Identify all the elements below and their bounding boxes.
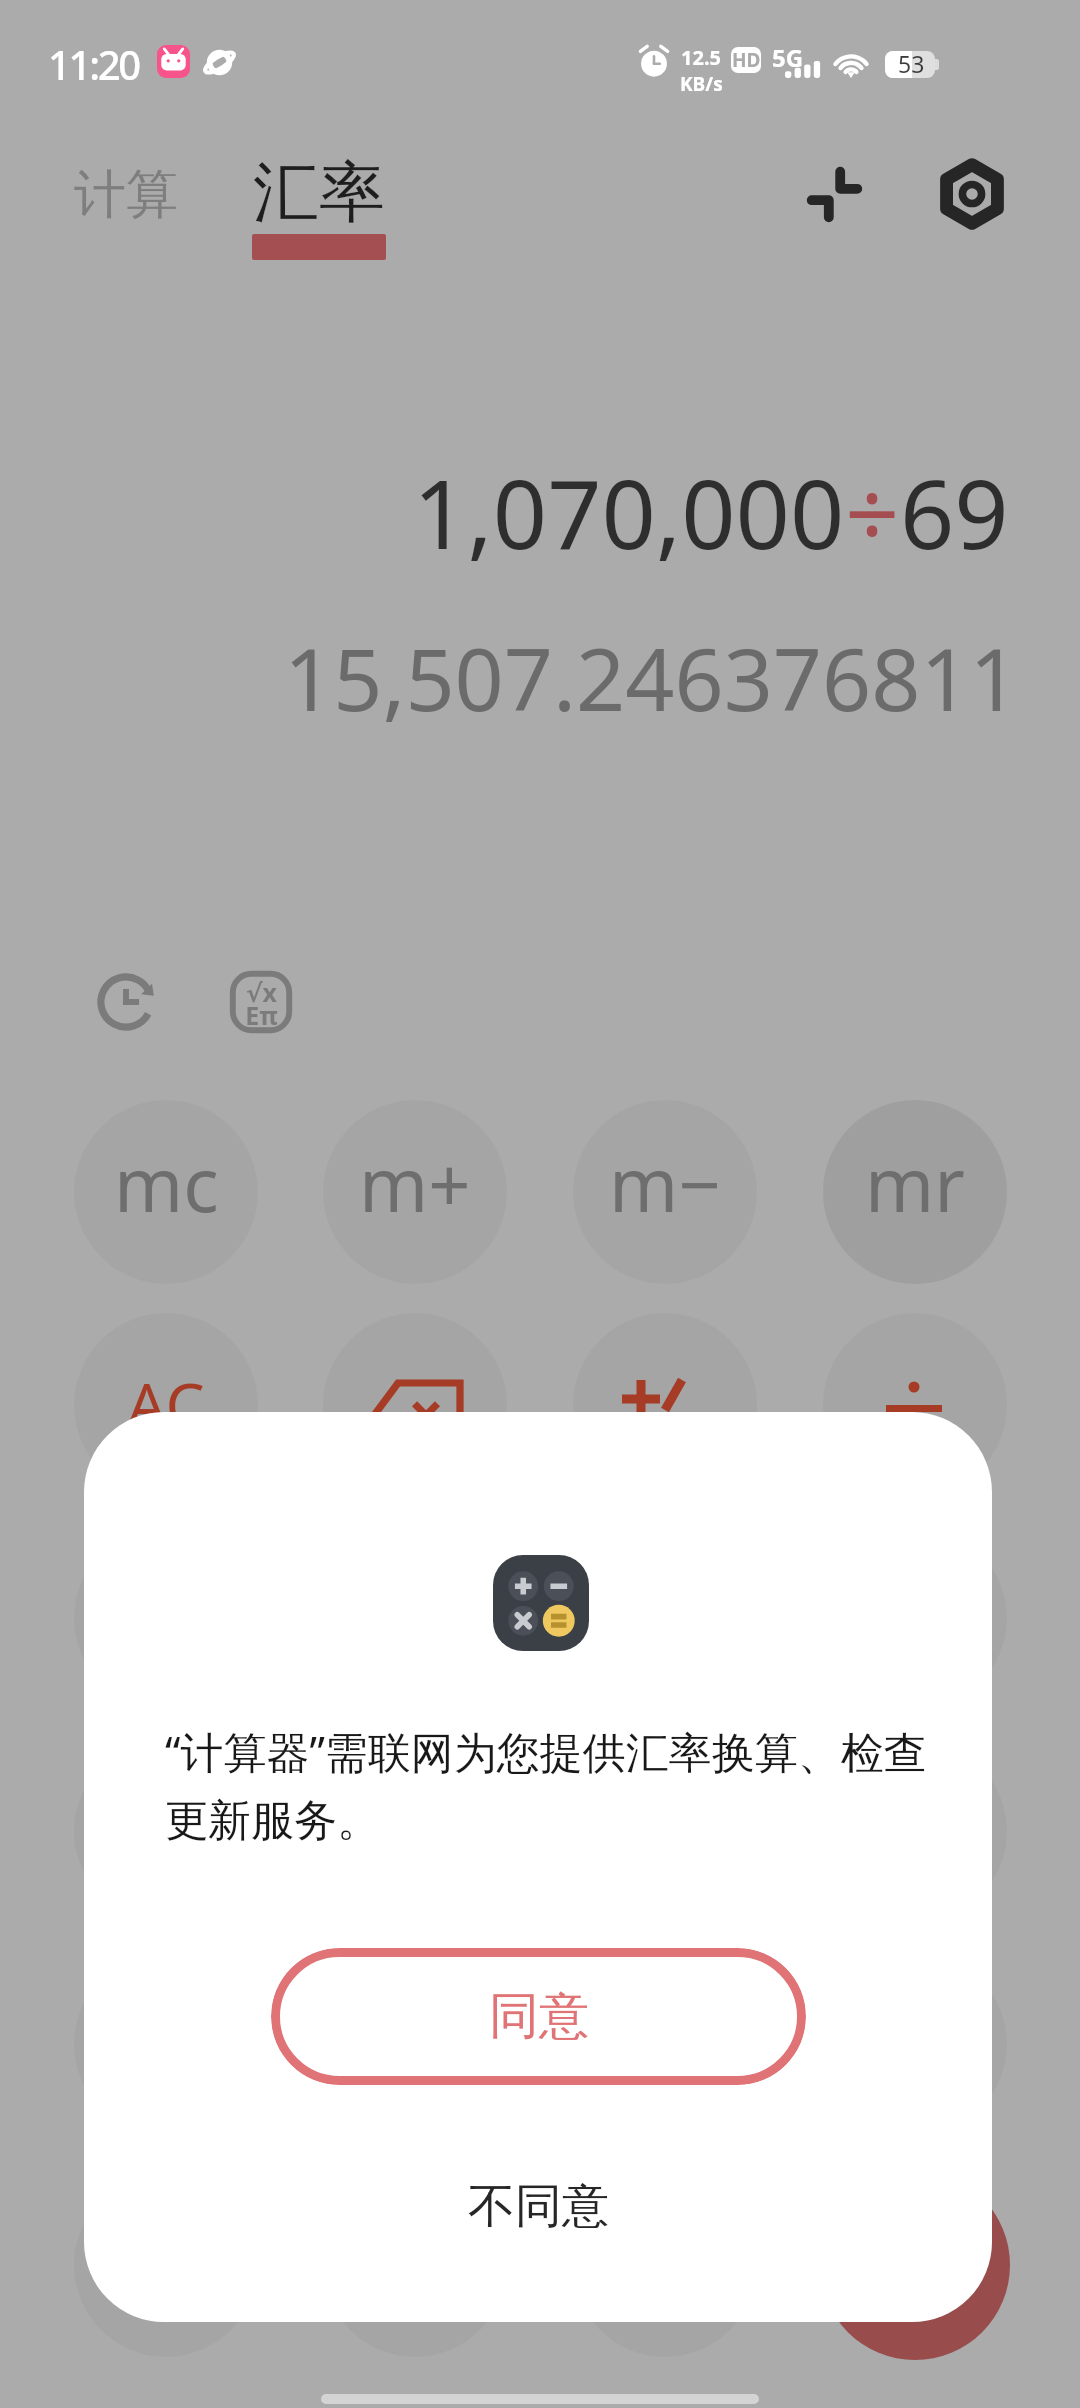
- staticText: mc: [114, 1133, 219, 1234]
- button[interactable]: 同意: [271, 1948, 806, 2085]
- staticText: 69: [900, 447, 1009, 576]
- staticText: AC: [127, 1362, 205, 1446]
- staticText: 同意: [489, 1985, 589, 2048]
- staticText: ÷: [845, 447, 900, 576]
- button[interactable]: m+: [323, 1100, 507, 1284]
- button[interactable]: mc: [74, 1100, 258, 1284]
- button[interactable]: mr: [823, 1100, 1007, 1284]
- button[interactable]: [573, 1952, 757, 2136]
- staticText: HD: [732, 47, 761, 73]
- button[interactable]: [323, 2173, 507, 2357]
- button[interactable]: 不同意: [84, 2146, 992, 2266]
- button[interactable]: [323, 1952, 507, 2136]
- button[interactable]: [74, 1952, 258, 2136]
- staticText: √x Eπ: [245, 975, 278, 1032]
- staticText: 12.5: [681, 44, 721, 71]
- staticText: 汇率: [253, 151, 385, 234]
- staticText: 11:20: [48, 37, 139, 91]
- button[interactable]: [573, 1313, 757, 1497]
- button[interactable]: [74, 1526, 258, 1710]
- button[interactable]: [820, 2170, 1010, 2360]
- button[interactable]: [74, 1739, 258, 1923]
- staticText: “计算器”需联网为您提供汇率换算、检查更新服务。: [165, 1722, 930, 1848]
- staticText: KB/s: [680, 71, 723, 97]
- button[interactable]: [823, 1526, 1007, 1710]
- button[interactable]: m−: [573, 1100, 757, 1284]
- staticText: 5G: [772, 41, 804, 74]
- button[interactable]: [823, 1952, 1007, 2136]
- button[interactable]: [573, 2173, 757, 2357]
- button[interactable]: [823, 1739, 1007, 1923]
- button[interactable]: Scientific mode: [216, 957, 306, 1047]
- staticText: mr: [865, 1133, 965, 1234]
- staticText: m+: [359, 1133, 471, 1234]
- button[interactable]: 汇率: [252, 151, 386, 260]
- staticText: m−: [609, 1133, 721, 1234]
- button[interactable]: [573, 1739, 757, 1923]
- button[interactable]: 计算: [74, 162, 178, 228]
- staticText: 不同意: [468, 2177, 609, 2236]
- button[interactable]: Collapse keypad: [788, 148, 881, 241]
- button[interactable]: Settings: [925, 147, 1018, 240]
- staticText: 计算: [74, 162, 178, 228]
- staticText: 53: [898, 48, 925, 75]
- button[interactable]: [323, 1739, 507, 1923]
- button[interactable]: [573, 1526, 757, 1710]
- button[interactable]: History: [81, 957, 171, 1047]
- staticText: 15,507.246376811: [284, 619, 1019, 736]
- button[interactable]: AC: [74, 1313, 258, 1497]
- staticText: 1,070,000: [413, 447, 845, 576]
- button[interactable]: [323, 1313, 507, 1497]
- button[interactable]: [323, 1526, 507, 1710]
- button[interactable]: [823, 1313, 1007, 1497]
- button[interactable]: [74, 2173, 258, 2357]
